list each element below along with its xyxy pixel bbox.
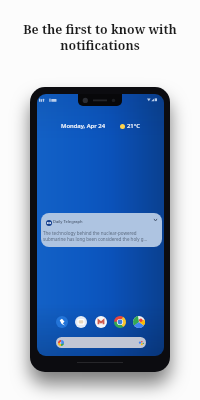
button[interactable]: Daily Telegraph xyxy=(41,213,162,247)
button[interactable]: Chrome xyxy=(114,316,126,328)
staticText: Monday, Apr 24 xyxy=(61,122,106,130)
button[interactable]: Google search xyxy=(56,337,146,348)
staticText: The technology behind the nuclear-powere… xyxy=(43,230,148,243)
staticText: 21°C xyxy=(127,122,140,130)
button[interactable]: Maps xyxy=(133,316,145,328)
staticText: Be the first to know with notifications xyxy=(12,21,188,54)
button[interactable]: Messages xyxy=(75,316,87,328)
staticText: Daily Telegraph xyxy=(53,219,83,224)
button[interactable]: Gmail xyxy=(95,316,107,328)
button[interactable]: Phone xyxy=(56,316,68,328)
